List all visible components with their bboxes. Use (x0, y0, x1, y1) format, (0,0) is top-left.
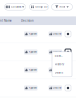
button[interactable]: Decline (48, 49, 62, 55)
staticText: Decline (53, 87, 61, 89)
button[interactable]: Row actions (65, 31, 71, 37)
staticText: ount Name (0, 19, 12, 22)
staticText: Filter (59, 5, 65, 8)
button[interactable]: Approve (24, 49, 37, 55)
staticText: Approve (29, 33, 37, 35)
button[interactable]: Decline (48, 67, 62, 73)
staticText: Columns (11, 5, 21, 8)
button[interactable]: Details (52, 68, 72, 77)
staticText: Approve (29, 51, 37, 53)
button[interactable]: Row actions (65, 85, 71, 91)
staticText: Decline (53, 33, 61, 35)
button[interactable]: Decline (48, 31, 62, 37)
staticText: Decision (21, 19, 34, 22)
staticText: Approve (29, 87, 37, 89)
staticText: Decline (53, 51, 61, 53)
staticText: Comment (55, 54, 64, 58)
staticText: Group by (35, 5, 47, 8)
button[interactable]: Group by (29, 4, 48, 10)
button[interactable]: History (52, 60, 72, 68)
button[interactable]: Columns (4, 4, 25, 10)
staticText: History (55, 63, 64, 66)
staticText: Details (55, 71, 63, 74)
button[interactable]: Approve (24, 85, 37, 91)
button[interactable]: Row actions (65, 49, 71, 55)
button[interactable]: Approve (24, 31, 37, 37)
button[interactable]: Approve (24, 67, 37, 73)
button[interactable]: Comment (52, 52, 72, 60)
button[interactable]: Filter (51, 4, 72, 10)
staticText: Approve (29, 69, 37, 71)
button[interactable]: Decline (48, 85, 62, 91)
